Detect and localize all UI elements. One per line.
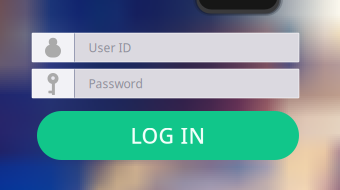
staticText: Password bbox=[89, 75, 143, 91]
button[interactable]: Password bbox=[32, 69, 299, 98]
staticText: User ID bbox=[89, 39, 132, 55]
button[interactable]: LOG IN bbox=[37, 111, 299, 160]
staticText: LOG IN bbox=[130, 121, 205, 150]
button[interactable]: User ID bbox=[32, 33, 299, 62]
